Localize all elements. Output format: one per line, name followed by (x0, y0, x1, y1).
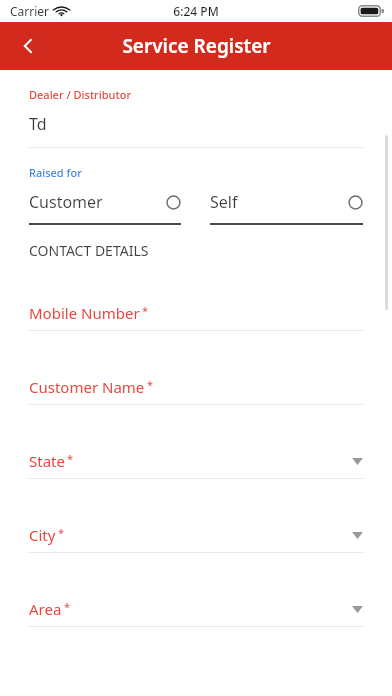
button[interactable]: Td (29, 113, 363, 135)
button[interactable]: Mobile Number (29, 303, 363, 331)
staticText: * (67, 451, 74, 466)
staticText: Carrier (10, 3, 50, 19)
button[interactable]: Customer Name (29, 377, 363, 405)
button[interactable]: City (29, 525, 363, 553)
staticText: CONTACT DETAILS (29, 241, 149, 260)
button[interactable]: Customer (29, 191, 181, 225)
staticText: Service Register (122, 33, 271, 59)
staticText: Dealer / Distributor (29, 87, 132, 102)
staticText: City (29, 525, 56, 545)
staticText: Self (210, 191, 238, 213)
staticText: Customer Name (29, 377, 145, 397)
staticText: * (64, 599, 71, 614)
staticText: * (58, 525, 65, 540)
staticText: Area (29, 599, 62, 619)
staticText: * (142, 303, 149, 318)
staticText: Mobile Number (29, 303, 140, 323)
button[interactable]: State (29, 451, 363, 479)
button[interactable]: Area (29, 599, 363, 627)
staticText: * (147, 377, 154, 392)
staticText: Raised for (29, 165, 82, 180)
button[interactable]: Self (210, 191, 363, 225)
staticText: State (29, 451, 65, 471)
button[interactable]: Back (6, 24, 50, 68)
staticText: Customer (29, 191, 103, 213)
staticText: 6:24 PM (173, 3, 219, 19)
staticText: Td (29, 113, 47, 135)
